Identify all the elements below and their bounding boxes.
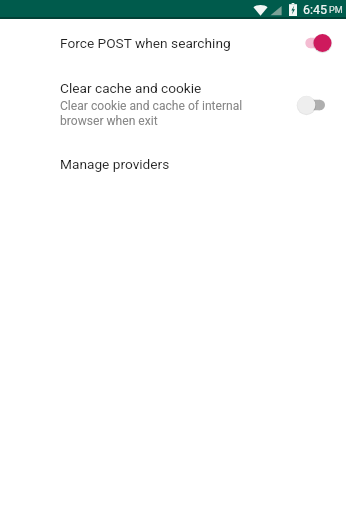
button[interactable]: Off (298, 95, 328, 115)
staticText: Clear cookie and cache of internal brows… (60, 99, 246, 128)
staticText: Clear cache and cookie (60, 80, 202, 96)
staticText: 6:45 (303, 2, 328, 17)
button[interactable]: On (298, 33, 328, 53)
button[interactable]: Clear cache and cookie (0, 73, 346, 136)
button[interactable]: Manage providers (0, 149, 346, 183)
staticText: Force POST when searching (60, 35, 231, 51)
staticText: PM (329, 5, 343, 16)
button[interactable]: Force POST when searching (0, 28, 346, 62)
staticText: Manage providers (60, 156, 170, 172)
